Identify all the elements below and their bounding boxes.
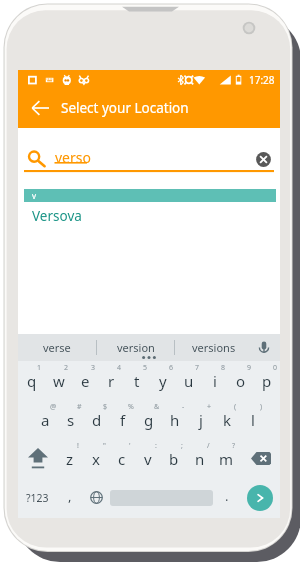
button[interactable]: versions (175, 334, 252, 361)
staticText: 17:28 (249, 73, 275, 87)
button[interactable]: ?123 (18, 478, 57, 517)
staticText: c (118, 449, 126, 469)
staticText: d (92, 410, 102, 430)
button[interactable]: Enter (247, 485, 273, 511)
button[interactable]: ; (161, 439, 187, 478)
staticText: 6 (169, 363, 174, 373)
button[interactable]: : (135, 439, 161, 478)
button[interactable]: . (214, 478, 240, 517)
staticText: ? (232, 441, 236, 451)
staticText: ! (77, 441, 79, 451)
staticText: e (81, 371, 90, 391)
button[interactable]: " (83, 439, 109, 478)
staticText: g (144, 410, 154, 430)
staticText: # (77, 402, 82, 412)
staticText: n (195, 449, 205, 469)
button[interactable]: Change keyboard language (83, 478, 109, 517)
button[interactable]: 1 (18, 361, 45, 400)
button[interactable]: Versova (24, 202, 276, 230)
staticText: 2 (64, 363, 69, 373)
button[interactable]: @ (32, 400, 58, 439)
staticText: + (207, 402, 212, 412)
staticText: ( (234, 402, 237, 412)
staticText: k (223, 410, 232, 430)
button[interactable]: & (136, 400, 162, 439)
button[interactable]: 0 (254, 361, 280, 400)
staticText: j (199, 410, 203, 430)
staticText: a (41, 410, 50, 430)
button[interactable]: , (57, 478, 83, 517)
staticText: ?123 (26, 491, 49, 505)
button[interactable]: 9 (228, 361, 254, 400)
button[interactable]: ? (213, 439, 239, 478)
button[interactable]: Voice input (254, 338, 274, 358)
button[interactable]: 6 (150, 361, 176, 400)
staticText: 4 (117, 363, 122, 373)
button[interactable]: $ (84, 400, 110, 439)
staticText: : (155, 441, 157, 451)
button[interactable]: / (187, 439, 213, 478)
button[interactable]: 2 (45, 361, 72, 400)
button[interactable]: 7 (176, 361, 202, 400)
button[interactable]: version (97, 334, 174, 361)
button[interactable]: Clear search (256, 152, 271, 167)
staticText: ) (260, 402, 263, 412)
button[interactable]: 4 (98, 361, 124, 400)
staticText: 3 (91, 363, 96, 373)
staticText: Select your Location (61, 99, 189, 117)
button[interactable]: Backspace (242, 439, 280, 478)
staticText: q (27, 371, 37, 391)
staticText: o (236, 371, 246, 391)
button[interactable]: - (162, 400, 188, 439)
staticText: " (103, 441, 106, 451)
staticText: h (170, 410, 180, 430)
staticText: 8 (221, 363, 226, 373)
staticText: version (117, 340, 155, 355)
staticText: x (92, 449, 100, 469)
staticText: s (67, 410, 75, 430)
button[interactable]: verse (18, 334, 96, 361)
staticText: 5 (143, 363, 148, 373)
staticText: r (108, 371, 115, 391)
button[interactable]: ! (57, 439, 83, 478)
button[interactable]: ( (214, 400, 240, 439)
button[interactable]: Shift (18, 439, 57, 478)
staticText: 7 (195, 363, 200, 373)
staticText: p (262, 371, 272, 391)
staticText: 0 (273, 363, 278, 373)
staticText: verso (55, 148, 91, 167)
staticText: @ (50, 402, 57, 412)
button[interactable]: Back (27, 95, 53, 121)
button[interactable]: # (58, 400, 84, 439)
staticText: 1 (37, 363, 42, 373)
staticText: ; (181, 441, 183, 451)
staticText: y (159, 371, 167, 391)
button[interactable]: 5 (124, 361, 150, 400)
staticText: v (144, 449, 152, 469)
staticText: . (225, 487, 229, 505)
staticText: % (128, 402, 134, 412)
staticText: verse (43, 340, 71, 355)
staticText: z (66, 449, 74, 469)
staticText: b (169, 449, 179, 469)
staticText: ' (129, 441, 131, 451)
staticText: Versova (32, 207, 82, 225)
staticText: w (53, 371, 65, 391)
staticText: t (134, 371, 140, 391)
button[interactable]: ' (109, 439, 135, 478)
button[interactable]: verso (18, 128, 280, 175)
staticText: u (184, 371, 194, 391)
button[interactable]: v (24, 189, 276, 202)
staticText: / (207, 441, 210, 451)
staticText: - (182, 402, 185, 412)
button[interactable]: + (188, 400, 214, 439)
button[interactable]: % (110, 400, 136, 439)
staticText: i (213, 371, 217, 391)
staticText: l (251, 410, 255, 430)
staticText: v (32, 190, 37, 201)
button[interactable]: ) (240, 400, 266, 439)
staticText: $ (103, 402, 108, 412)
button[interactable]: 8 (202, 361, 228, 400)
button[interactable]: 3 (72, 361, 98, 400)
